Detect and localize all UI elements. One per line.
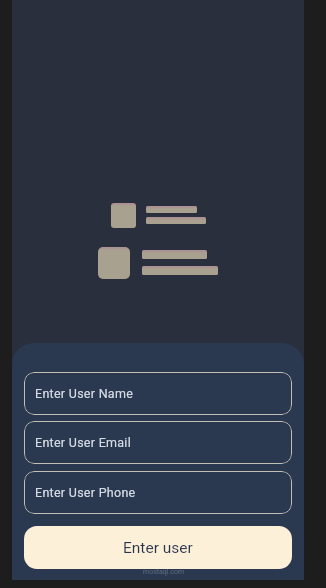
staticText: Enter user — [123, 539, 193, 557]
button[interactable]: Enter user — [24, 526, 292, 569]
staticText: Enter User Phone — [35, 485, 136, 500]
button[interactable]: Enter User Phone — [24, 471, 292, 514]
staticText: Enter User Email — [35, 435, 132, 450]
button[interactable]: Enter User Email — [24, 421, 292, 464]
button[interactable]: Enter User Name — [24, 372, 292, 415]
staticText: mostaql.com — [143, 568, 185, 576]
staticText: Enter User Name — [35, 386, 134, 401]
